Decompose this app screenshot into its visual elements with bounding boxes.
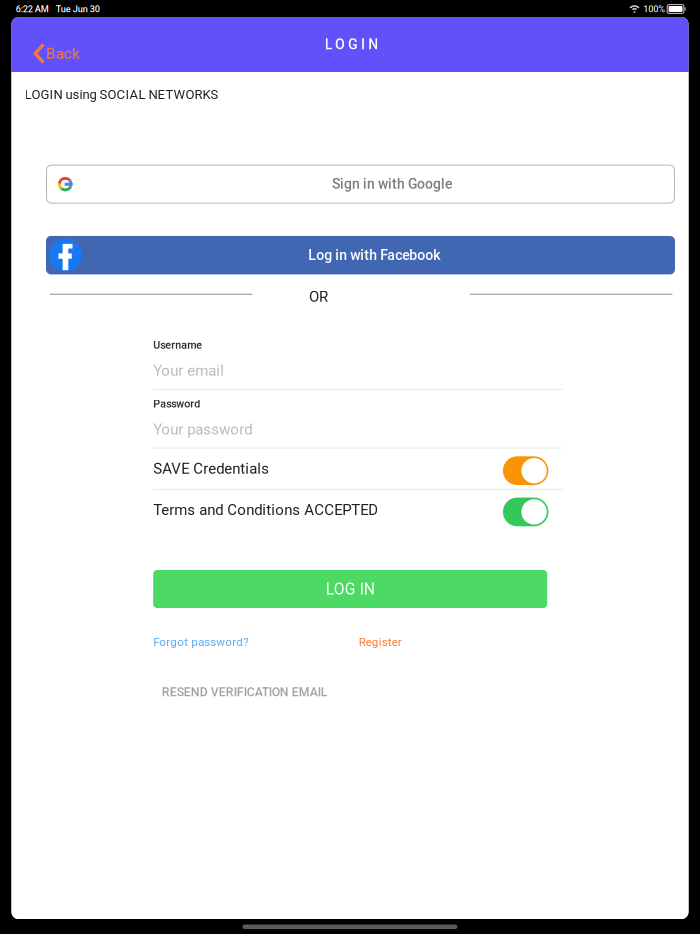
staticText: Register — [359, 635, 402, 649]
staticText: Your email — [153, 362, 224, 379]
staticText: 6:22 AM — [16, 4, 49, 14]
staticText: SAVE Credentials — [153, 460, 269, 477]
staticText: Sign in with Google — [332, 176, 452, 192]
staticText: 100% — [643, 4, 665, 14]
staticText: Terms and Conditions ACCEPTED — [153, 501, 378, 519]
staticText: OR — [309, 288, 328, 305]
staticText: RESEND VERIFICATION EMAIL — [162, 685, 328, 699]
staticText: LOG IN — [326, 580, 375, 598]
staticText: Password — [153, 398, 200, 410]
staticText: Back — [46, 44, 80, 62]
button[interactable]: LOG IN — [153, 570, 547, 608]
staticText: Log in with Facebook — [308, 247, 440, 263]
staticText: Tue Jun 30 — [56, 4, 100, 14]
button[interactable]: Back — [11, 17, 94, 72]
staticText: Your password — [153, 421, 252, 438]
button[interactable]: Sign in with Google — [46, 165, 674, 203]
staticText: LOGIN using SOCIAL NETWORKS — [24, 87, 218, 102]
button[interactable]: Register — [359, 633, 402, 651]
button[interactable]: Forgot password? — [153, 633, 248, 651]
button[interactable]: RESEND VERIFICATION EMAIL — [153, 684, 328, 700]
staticText: Username — [153, 339, 202, 351]
staticText: Forgot password? — [153, 635, 248, 649]
staticText: LOGIN — [325, 36, 378, 53]
button[interactable]: Log in with Facebook — [46, 236, 675, 274]
